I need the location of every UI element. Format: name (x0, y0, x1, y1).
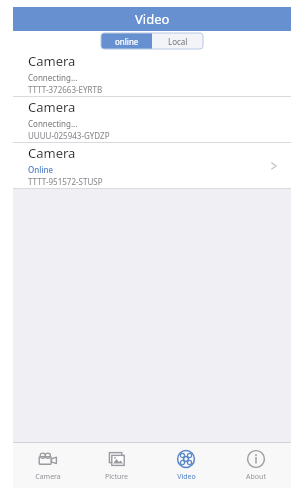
staticText: About (246, 472, 266, 482)
button[interactable]: Local (152, 33, 203, 49)
staticText: Camera (28, 98, 76, 116)
button[interactable]: Camera (13, 97, 291, 142)
button[interactable]: Camera (13, 442, 82, 488)
staticText: Camera (28, 144, 76, 162)
staticText: TTTT-951572-STUSP (28, 176, 103, 187)
button[interactable]: Picture (82, 442, 151, 488)
button[interactable]: online (101, 33, 152, 49)
staticText: Online (28, 164, 54, 175)
button[interactable]: Video (151, 442, 221, 488)
staticText: Picture (105, 472, 128, 482)
staticText: Camera (28, 52, 76, 70)
staticText: online (115, 36, 139, 47)
button[interactable]: Camera (13, 143, 291, 188)
button[interactable]: Camera (13, 51, 291, 96)
staticText: Video (135, 10, 170, 28)
button[interactable]: About (221, 442, 291, 488)
staticText: Local (168, 36, 188, 47)
staticText: TTTT-372663-EYRTB (28, 84, 103, 95)
staticText: UUUU-025943-GYDZP (28, 130, 110, 141)
staticText: Video (177, 472, 196, 482)
staticText: Connecting... (28, 118, 78, 129)
staticText: Connecting... (28, 72, 78, 83)
staticText: Camera (35, 472, 61, 482)
